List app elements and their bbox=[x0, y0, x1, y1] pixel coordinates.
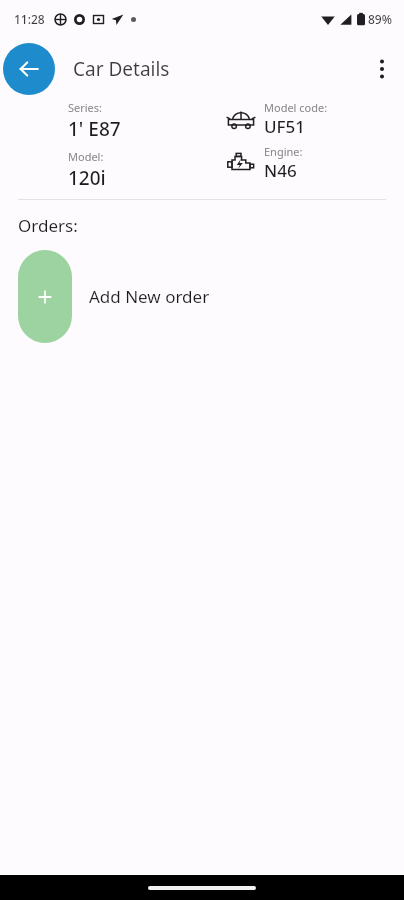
staticText: UF51 bbox=[264, 115, 305, 138]
staticText: Orders: bbox=[18, 214, 78, 237]
button[interactable]: More options bbox=[360, 47, 404, 91]
button[interactable]: Back bbox=[3, 43, 55, 95]
staticText: Add New order bbox=[89, 285, 210, 308]
staticText: Model: bbox=[68, 149, 104, 164]
staticText: N46 bbox=[264, 159, 297, 182]
staticText: Car Details bbox=[73, 56, 170, 82]
staticText: Series: bbox=[68, 100, 103, 115]
staticText: 1' E87 bbox=[68, 116, 121, 142]
staticText: 120i bbox=[68, 165, 106, 191]
staticText: 11:28 bbox=[14, 11, 45, 27]
staticText: Engine: bbox=[264, 144, 303, 159]
button[interactable]: Add New order bbox=[0, 250, 404, 343]
staticText: 89% bbox=[368, 11, 392, 27]
staticText: Model code: bbox=[264, 100, 328, 115]
